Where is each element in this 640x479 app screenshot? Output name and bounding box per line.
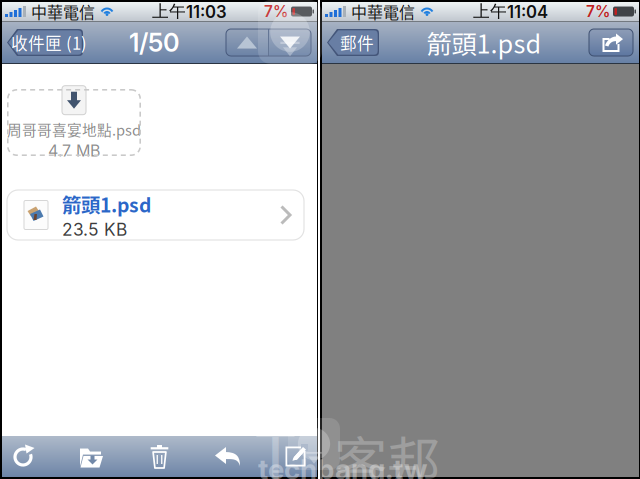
button[interactable]: Refresh [3, 436, 44, 477]
staticText: 收件匣 (1) [11, 30, 87, 54]
staticText: 箭頭1.psd [426, 24, 541, 61]
staticText: 上午11:04 [473, 1, 548, 22]
staticText: 箭頭1.psd [62, 190, 151, 218]
staticText: 中華電信 [351, 0, 415, 23]
button[interactable]: Share [589, 29, 633, 56]
button[interactable]: 收件匣 (1) [7, 29, 83, 56]
staticText: 23.5 KB [62, 219, 127, 240]
button[interactable]: Compose [275, 436, 316, 477]
staticText: 7% [264, 2, 288, 21]
button[interactable]: Next message [269, 29, 311, 56]
staticText: 上午11:03 [152, 1, 227, 22]
button[interactable]: Move to folder [71, 436, 112, 477]
button[interactable]: Delete [139, 436, 180, 477]
staticText: 4.7 MB [48, 141, 100, 160]
staticText: 1/50 [129, 27, 180, 58]
button[interactable]: 箭頭1.psd [7, 190, 304, 240]
staticText: 中華電信 [31, 0, 95, 23]
staticText: 客邦 [334, 420, 440, 479]
button[interactable]: Previous message [226, 29, 268, 56]
staticText: techbang.tw [258, 452, 427, 479]
button[interactable]: Reply [207, 436, 248, 477]
button[interactable]: 郵件 [327, 29, 379, 56]
staticText: 7% [586, 2, 610, 21]
staticText: 周哥哥喜宴地點.psd [7, 119, 141, 140]
button[interactable]: 周哥哥喜宴地點.psd [7, 89, 141, 156]
staticText: T [253, 414, 298, 479]
staticText: 郵件 [340, 30, 374, 54]
